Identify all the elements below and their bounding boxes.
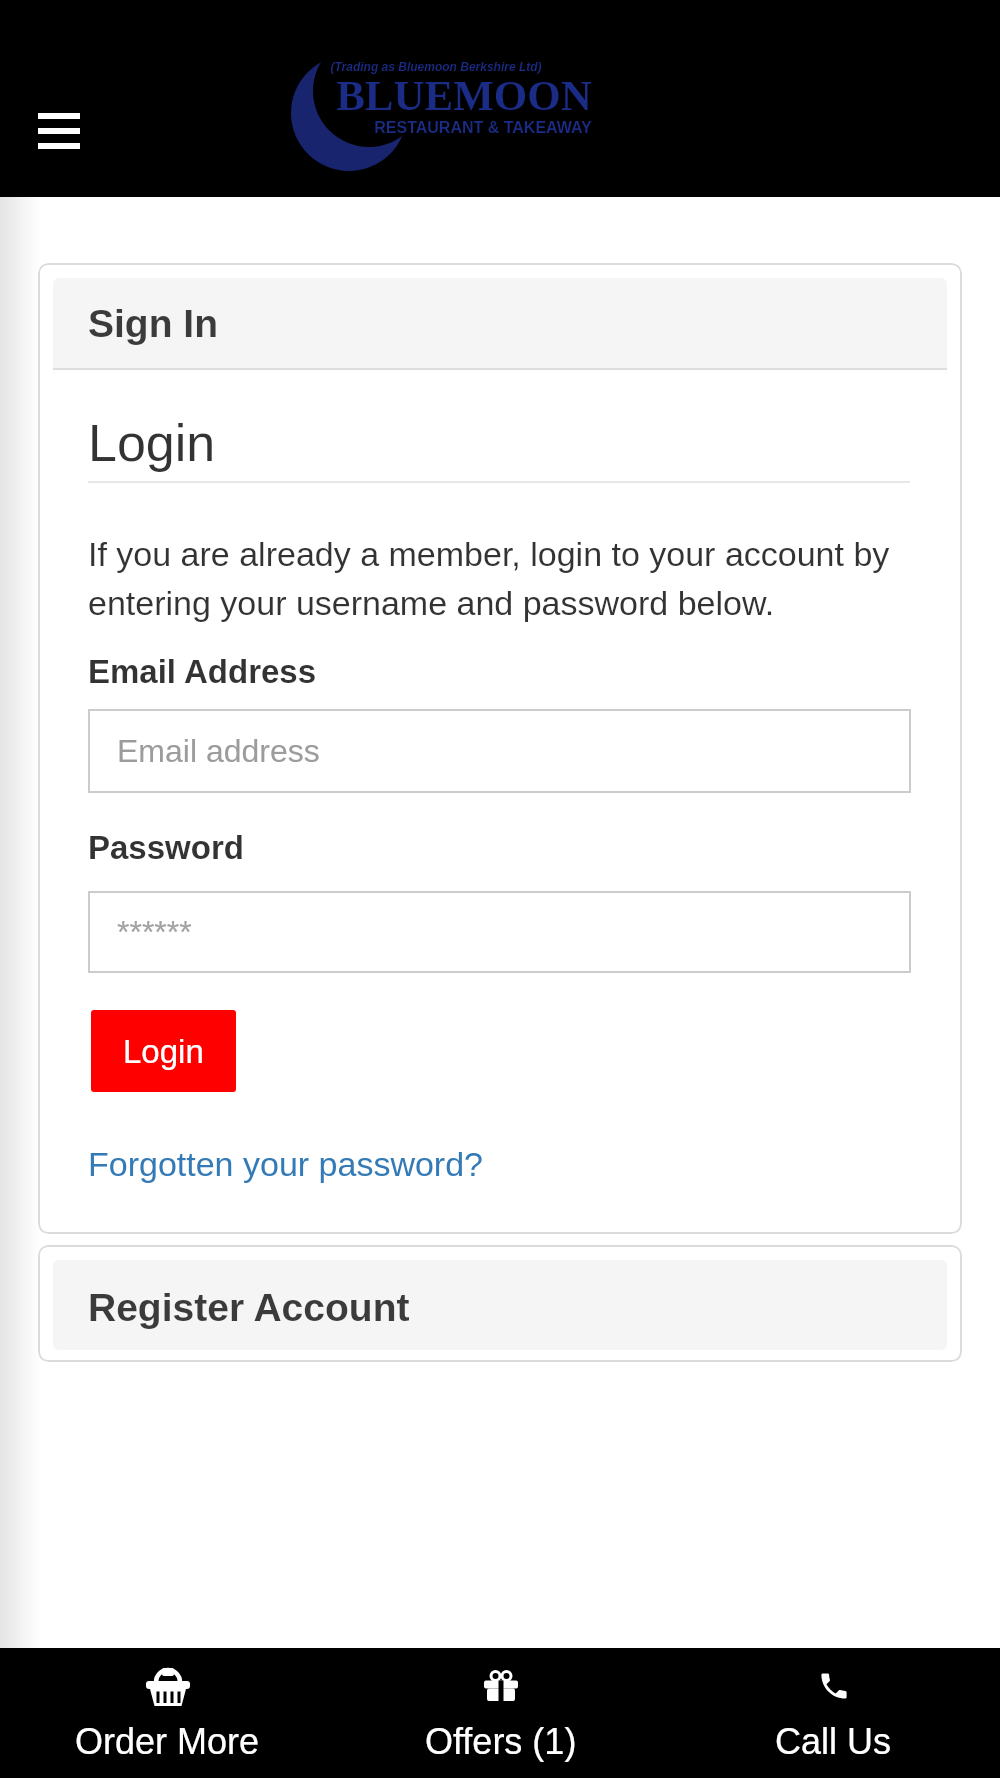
button[interactable]: Call Us: [667, 1648, 1000, 1778]
staticText: Login: [123, 1033, 204, 1070]
button[interactable]: ******: [88, 891, 911, 973]
button[interactable]: Forgotten your password?: [88, 1145, 483, 1183]
button[interactable]: Login: [91, 1010, 236, 1092]
button[interactable]: Email address: [88, 709, 911, 793]
staticText: Register Account: [88, 1286, 410, 1330]
staticText: Email Address: [88, 653, 317, 690]
staticText: If you are already a member, login to yo…: [88, 535, 918, 622]
button[interactable]: Order More: [0, 1648, 334, 1778]
staticText: Password: [88, 829, 244, 866]
staticText: Offers (1): [425, 1721, 577, 1761]
staticText: RESTAURANT & TAKEAWAY: [343, 119, 623, 137]
button[interactable]: Register Account: [38, 1245, 962, 1362]
staticText: Order More: [75, 1721, 260, 1761]
staticText: Call Us: [775, 1721, 892, 1761]
button[interactable]: Offers (1): [334, 1648, 667, 1778]
staticText: Sign In: [88, 302, 218, 346]
staticText: ******: [117, 914, 192, 950]
staticText: Email address: [117, 733, 320, 769]
staticText: Login: [88, 414, 216, 472]
staticText: BLUEMOON: [324, 72, 604, 120]
staticText: (Trading as Bluemoon Berkshire Ltd): [316, 60, 556, 73]
button[interactable]: [24, 96, 94, 166]
button[interactable]: (Trading as Bluemoon Berkshire Ltd): [285, 45, 605, 175]
